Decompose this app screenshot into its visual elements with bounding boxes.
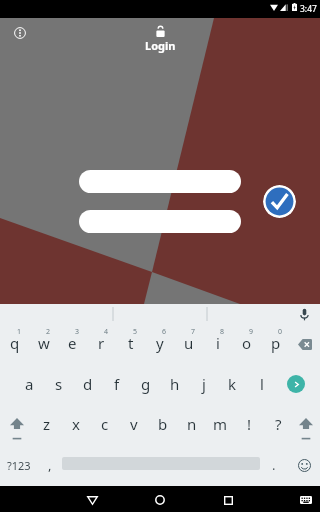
staticText: h [170, 374, 180, 394]
staticText: u [184, 333, 194, 353]
button[interactable]: b [148, 404, 177, 444]
button[interactable]: m [206, 404, 235, 444]
button[interactable]: Shift [293, 404, 320, 444]
staticText: a [25, 374, 34, 394]
button[interactable]: , [38, 444, 62, 486]
button[interactable]: 7 [174, 324, 203, 364]
staticText: b [158, 414, 168, 434]
button[interactable]: c [90, 404, 119, 444]
staticText: l [260, 374, 264, 394]
button[interactable]: k [218, 364, 247, 404]
staticText: p [271, 333, 281, 353]
button[interactable]: 6 [145, 324, 174, 364]
button[interactable]: 2 [29, 324, 58, 364]
button[interactable]: n [177, 404, 206, 444]
button[interactable]: Emoji [288, 444, 320, 486]
staticText: x [72, 414, 80, 434]
button[interactable]: ? [264, 404, 293, 444]
button[interactable]: . [260, 444, 288, 486]
staticText: c [101, 414, 109, 434]
staticText: g [141, 374, 151, 394]
button[interactable]: 9 [232, 324, 261, 364]
staticText: 0 [278, 327, 283, 337]
staticText: . [272, 456, 276, 474]
staticText: 9 [249, 327, 254, 337]
button[interactable]: Enter [276, 364, 320, 404]
button[interactable]: Switch keyboard [292, 486, 320, 512]
staticText: w [38, 333, 50, 353]
button[interactable]: g [131, 364, 160, 404]
button[interactable]: ! [235, 404, 264, 444]
button[interactable]: f [102, 364, 131, 404]
button[interactable]: v [119, 404, 148, 444]
staticText: 8 [220, 327, 225, 337]
staticText: k [228, 374, 237, 394]
staticText: t [128, 333, 134, 353]
staticText: o [242, 333, 252, 353]
button[interactable]: Shift [3, 404, 32, 444]
staticText: v [130, 414, 138, 434]
button[interactable]: 1 [0, 324, 29, 364]
button[interactable]: 8 [203, 324, 232, 364]
button[interactable]: Username field [79, 170, 241, 193]
staticText: Login [145, 38, 176, 53]
staticText: 1 [17, 327, 22, 337]
staticText: z [43, 414, 51, 434]
button[interactable]: x [61, 404, 90, 444]
button[interactable]: Back [74, 486, 110, 512]
button[interactable]: 4 [87, 324, 116, 364]
button[interactable]: s [44, 364, 73, 404]
staticText: 6 [162, 327, 167, 337]
staticText: 2 [46, 327, 51, 337]
button[interactable]: 5 [116, 324, 145, 364]
staticText: ?123 [7, 458, 31, 473]
staticText: i [216, 333, 220, 353]
staticText: e [68, 333, 77, 353]
button[interactable]: a [15, 364, 44, 404]
button[interactable]: 3 [58, 324, 87, 364]
button[interactable]: j [189, 364, 218, 404]
button[interactable]: 0 [261, 324, 290, 364]
button[interactable]: Voice input [296, 304, 313, 324]
staticText: f [114, 374, 120, 394]
staticText: 4 [104, 327, 109, 337]
button[interactable]: Backspace [290, 324, 320, 364]
button[interactable]: Password field [79, 210, 241, 233]
staticText: n [187, 414, 197, 434]
staticText: d [83, 374, 93, 394]
button[interactable]: Home [142, 486, 178, 512]
staticText: y [156, 333, 164, 353]
button[interactable]: Recents [210, 486, 246, 512]
staticText: j [202, 374, 206, 394]
staticText: s [55, 374, 63, 394]
button[interactable]: z [32, 404, 61, 444]
staticText: ! [247, 414, 252, 434]
button[interactable]: Submit [263, 185, 296, 218]
staticText: 7 [191, 327, 196, 337]
button[interactable]: d [73, 364, 102, 404]
staticText: m [213, 414, 228, 434]
button[interactable]: More options [8, 21, 31, 44]
button[interactable]: l [247, 364, 276, 404]
staticText: 3:47 [300, 3, 317, 15]
staticText: ? [275, 414, 282, 434]
staticText: r [98, 333, 105, 353]
button[interactable]: ?123 [0, 444, 38, 486]
staticText: , [48, 456, 52, 474]
staticText: 3 [75, 327, 80, 337]
button[interactable]: h [160, 364, 189, 404]
staticText: q [10, 333, 20, 353]
staticText: 5 [133, 327, 138, 337]
